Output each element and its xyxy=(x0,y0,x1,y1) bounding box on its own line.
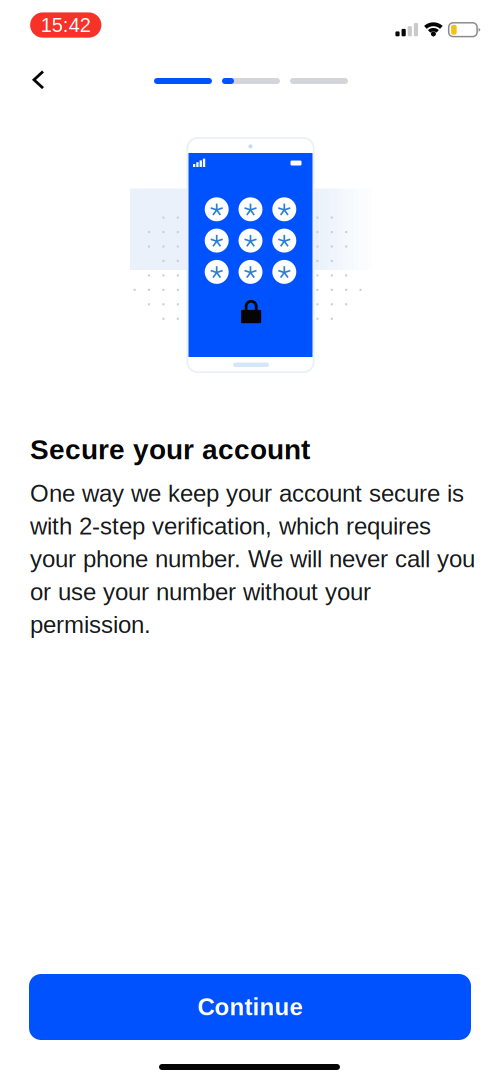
button[interactable]: Continue xyxy=(29,974,471,1040)
staticText: Continue xyxy=(197,994,302,1020)
button[interactable]: Back xyxy=(17,58,61,102)
staticText: 15:42 xyxy=(41,14,91,36)
staticText: One way we keep your account secure is w… xyxy=(30,480,475,638)
staticText: Secure your account xyxy=(30,434,310,465)
